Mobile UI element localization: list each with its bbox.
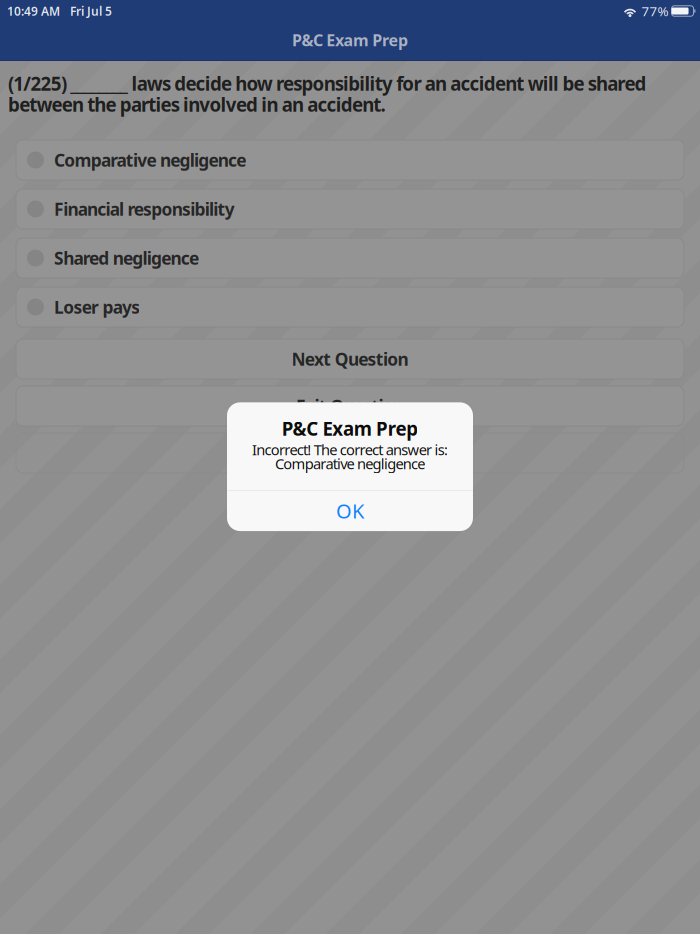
staticText: Loser pays [54,295,140,318]
staticText: Shared negligence [54,246,199,269]
staticText: OK [336,498,364,524]
staticText: P&C Exam Prep [282,416,418,441]
staticText: Incorrect! The correct answer is: [252,440,448,459]
button[interactable]: Financial responsibility [16,189,684,229]
button[interactable]: OK [227,491,473,531]
staticText: P&C Exam Prep [292,29,408,51]
button[interactable]: Next Question [16,339,684,379]
button[interactable]: Comparative negligence [16,140,684,180]
staticText: (1/225) ________ laws decide how respons… [8,71,647,96]
staticText: between the parties involved in an accid… [8,92,385,117]
button[interactable]: Shared negligence [16,238,684,278]
staticText: Next Question [291,347,408,370]
staticText: Comparative negligence [54,148,246,171]
staticText: 10:49 AM [7,3,60,19]
staticText: Exit Question [296,394,404,417]
staticText: Financial responsibility [54,197,235,220]
staticText: 77% [641,2,668,20]
button[interactable]: Loser pays [16,287,684,327]
button[interactable]: Exit Question [16,386,684,426]
staticText: Comparative negligence [275,454,425,473]
button[interactable]: Disabled action [16,433,684,473]
staticText: Fri Jul 5 [70,3,112,19]
